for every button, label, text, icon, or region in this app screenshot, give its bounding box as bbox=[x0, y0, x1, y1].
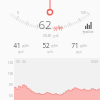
staticText: 分钟 bbox=[53, 26, 63, 32]
button[interactable]: Heart rate trend chart bbox=[0, 58, 100, 100]
staticText: 23:59 bbox=[91, 60, 98, 64]
staticText: 最小 bbox=[18, 50, 24, 54]
staticText: 71 bbox=[71, 41, 79, 49]
staticText: 00 bbox=[16, 60, 20, 64]
staticText: 最大 bbox=[76, 50, 82, 54]
staticText: 80 bbox=[9, 83, 13, 87]
staticText: 120 bbox=[80, 11, 86, 15]
button[interactable]: History chart bbox=[82, 22, 94, 34]
button[interactable]: 41 bbox=[11, 40, 31, 55]
staticText: 52 bbox=[42, 41, 50, 49]
staticText: 0 bbox=[17, 11, 19, 15]
staticText: 06 bbox=[22, 60, 26, 64]
staticText: 次/分 bbox=[22, 44, 29, 48]
button[interactable]: 71 bbox=[69, 40, 89, 55]
staticText: 120 bbox=[8, 61, 13, 65]
staticText: 次/分 bbox=[51, 44, 58, 48]
staticText: 41 bbox=[13, 41, 21, 49]
staticText: 查看记录 bbox=[82, 30, 94, 34]
staticText: 60 bbox=[9, 94, 13, 98]
button[interactable]: 52 bbox=[40, 40, 60, 55]
staticText: 平均 bbox=[47, 50, 53, 54]
staticText: 60-80 正常 bbox=[43, 34, 59, 38]
staticText: 100 bbox=[8, 72, 13, 76]
button[interactable]: Heart rate gauge bbox=[0, 0, 100, 17]
staticText: 次/分 bbox=[80, 44, 87, 48]
staticText: 62 bbox=[38, 17, 52, 33]
